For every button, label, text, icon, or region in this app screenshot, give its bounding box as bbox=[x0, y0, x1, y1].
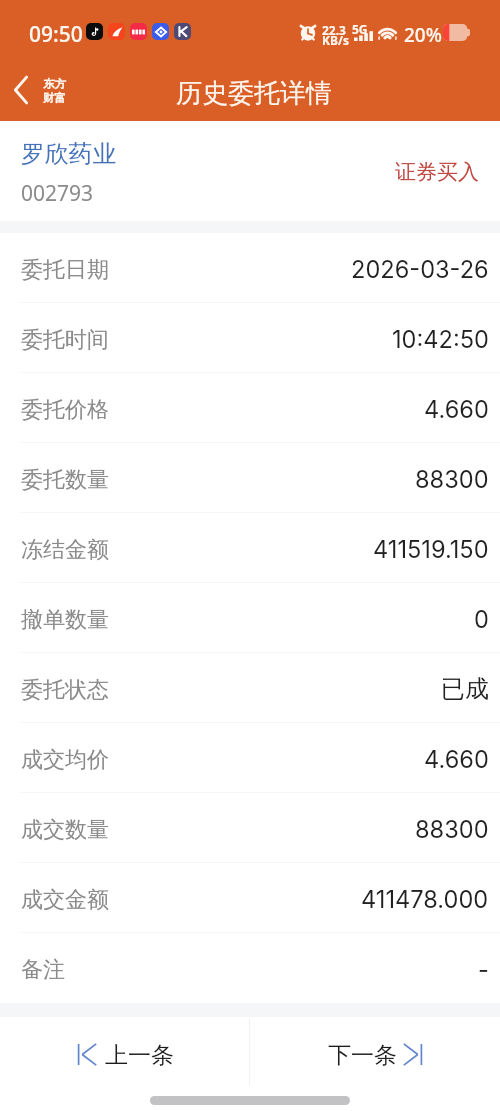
staticText: 88300 bbox=[415, 465, 489, 494]
staticText: 0 bbox=[474, 605, 489, 634]
button[interactable]: 委托日期 bbox=[0, 233, 500, 303]
staticText: - bbox=[478, 955, 489, 984]
staticText: 历史委托详情 bbox=[176, 77, 332, 110]
staticText: 4.660 bbox=[424, 395, 489, 424]
staticText: 委托状态 bbox=[21, 676, 109, 704]
button[interactable]: 成交均价 bbox=[0, 723, 500, 793]
button[interactable]: 委托时间 bbox=[0, 303, 500, 373]
staticText: 成交均价 bbox=[21, 746, 109, 774]
staticText: 4.660 bbox=[424, 745, 489, 774]
staticText: 冻结金额 bbox=[21, 536, 109, 564]
staticText: 委托数量 bbox=[21, 466, 109, 494]
staticText: 88300 bbox=[415, 815, 489, 844]
button[interactable]: 东方 bbox=[43, 77, 66, 105]
staticText: 撤单数量 bbox=[21, 606, 109, 634]
button[interactable]: 委托价格 bbox=[0, 373, 500, 443]
staticText: 财富 bbox=[43, 91, 66, 105]
staticText: 委托价格 bbox=[21, 396, 109, 424]
button[interactable]: 上一条 bbox=[0, 1017, 250, 1091]
staticText: 委托时间 bbox=[21, 326, 109, 354]
button[interactable]: 成交金额 bbox=[0, 863, 500, 933]
button[interactable]: 成交数量 bbox=[0, 793, 500, 863]
staticText: 委托日期 bbox=[21, 256, 109, 284]
staticText: 09:50 bbox=[29, 20, 83, 49]
button[interactable]: 撤单数量 bbox=[0, 583, 500, 653]
staticText: 2026-03-26 bbox=[351, 255, 489, 284]
button[interactable]: 罗欣药业 bbox=[0, 121, 500, 221]
staticText: KB/s bbox=[322, 32, 349, 48]
button[interactable]: 委托状态 bbox=[0, 653, 500, 723]
staticText: 上一条 bbox=[105, 1041, 174, 1070]
staticText: 22.3 bbox=[322, 22, 346, 38]
button[interactable]: 冻结金额 bbox=[0, 513, 500, 583]
staticText: 罗欣药业 bbox=[21, 139, 117, 169]
staticText: 002793 bbox=[21, 179, 94, 208]
staticText: 成交金额 bbox=[21, 886, 109, 914]
button[interactable]: 备注 bbox=[0, 933, 500, 1003]
staticText: 备注 bbox=[21, 956, 65, 984]
staticText: 下一条 bbox=[328, 1041, 397, 1070]
staticText: 5G bbox=[352, 21, 368, 37]
staticText: 成交数量 bbox=[21, 816, 109, 844]
button[interactable]: 下一条 bbox=[250, 1017, 500, 1091]
button[interactable]: 返回 bbox=[1, 70, 41, 110]
staticText: 证券买入 bbox=[395, 159, 479, 185]
button[interactable]: 委托数量 bbox=[0, 443, 500, 513]
staticText: 已成 bbox=[441, 674, 489, 704]
staticText: 10:42:50 bbox=[392, 325, 489, 354]
staticText: 20% bbox=[404, 22, 442, 48]
staticText: 411519.150 bbox=[373, 535, 489, 564]
staticText: 411478.000 bbox=[361, 885, 489, 914]
staticText: 东方 bbox=[43, 77, 66, 91]
